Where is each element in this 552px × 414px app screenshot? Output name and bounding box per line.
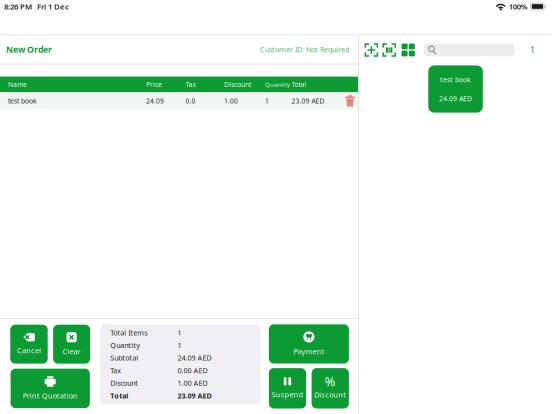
- staticText: Suspend: [271, 389, 303, 399]
- staticText: 24.09: [146, 96, 164, 105]
- staticText: 1: [177, 328, 181, 337]
- staticText: Price: [146, 80, 162, 89]
- staticText: New Order: [6, 43, 52, 55]
- button[interactable]: Suspend: [269, 368, 306, 408]
- button[interactable]: Payment: [269, 324, 349, 363]
- staticText: Quantity: [265, 80, 290, 88]
- button[interactable]: Clear: [53, 325, 90, 364]
- staticText: 0.0: [186, 96, 196, 105]
- staticText: 23.09 AED: [292, 96, 325, 105]
- button[interactable]: Remove test book: [345, 95, 355, 107]
- staticText: Quantity: [110, 340, 140, 350]
- staticText: 1: [177, 340, 181, 350]
- staticText: Discount: [224, 80, 251, 89]
- staticText: test book: [440, 75, 471, 84]
- staticText: 8:26 PM: [4, 1, 32, 12]
- staticText: Total Items: [110, 328, 147, 337]
- staticText: 24.09 AED: [177, 353, 211, 363]
- button[interactable]: Add custom item: [365, 43, 378, 57]
- staticText: Print Quotation: [23, 391, 78, 401]
- staticText: test book: [8, 96, 37, 105]
- staticText: Payment: [293, 346, 324, 356]
- staticText: %: [325, 373, 336, 390]
- staticText: 24.09 AED: [439, 94, 472, 103]
- staticText: 23.09 AED: [177, 391, 211, 400]
- staticText: Tax: [186, 80, 197, 89]
- button[interactable]: test book: [428, 65, 483, 113]
- button[interactable]: Print Quotation: [11, 369, 90, 408]
- staticText: 0.00 AED: [177, 365, 207, 375]
- staticText: Total: [292, 80, 307, 89]
- staticText: Subtotal: [110, 353, 138, 363]
- staticText: Tax: [110, 365, 121, 375]
- button[interactable]: Cancel: [10, 325, 48, 364]
- staticText: Discount: [314, 390, 346, 400]
- staticText: Clear: [63, 346, 81, 356]
- button[interactable]: %: [312, 368, 349, 408]
- button[interactable]: Browse categories: [402, 44, 415, 56]
- staticText: Discount: [110, 378, 138, 388]
- button[interactable]: Customer ID: Not Required: [260, 44, 349, 54]
- staticText: 1: [265, 96, 269, 105]
- staticText: 1.00 AED: [177, 378, 207, 388]
- staticText: 1.00: [224, 96, 238, 105]
- button[interactable]: Scan barcode: [382, 43, 396, 57]
- staticText: Customer ID: Not Required: [260, 44, 349, 54]
- staticText: 100%: [509, 1, 528, 12]
- staticText: Cancel: [17, 345, 41, 355]
- staticText: Fri 1 Dec: [37, 1, 69, 12]
- staticText: 1: [530, 44, 535, 56]
- staticText: Name: [8, 80, 27, 89]
- staticText: Total: [110, 391, 128, 400]
- button[interactable]: Search products: [424, 44, 515, 56]
